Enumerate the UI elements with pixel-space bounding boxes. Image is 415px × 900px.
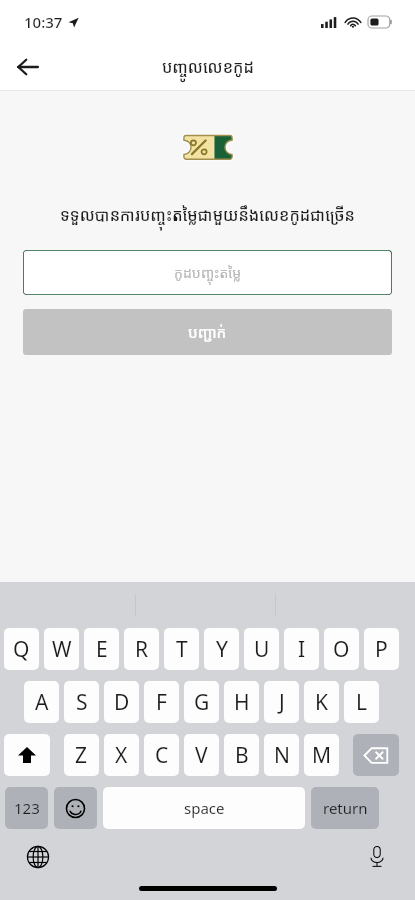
staticText: R	[135, 635, 149, 664]
button[interactable]: Z	[64, 734, 99, 776]
button[interactable]: M	[304, 734, 339, 776]
button[interactable]: X	[104, 734, 139, 776]
staticText: កូដបញ្ចុះតម្លៃ	[174, 263, 242, 282]
staticText: U	[254, 635, 270, 664]
button[interactable]: D	[104, 681, 139, 723]
button[interactable]: A	[24, 681, 59, 723]
staticText: បញ្ចូលលេខកូដ	[162, 56, 254, 78]
button[interactable]: J	[264, 681, 299, 723]
button[interactable]: បញ្ជាក់	[23, 309, 392, 355]
button[interactable]: R	[124, 628, 159, 670]
button[interactable]: Emoji	[54, 787, 97, 829]
staticText: I	[298, 635, 306, 664]
staticText: space	[184, 798, 225, 818]
button[interactable]: P	[364, 628, 399, 670]
button[interactable]: C	[144, 734, 179, 776]
button[interactable]: S	[64, 681, 99, 723]
staticText: V	[195, 741, 208, 770]
staticText: G	[194, 688, 210, 717]
staticText: return	[323, 798, 368, 818]
staticText: P	[375, 635, 388, 664]
staticText: D	[114, 688, 130, 717]
button[interactable]: return	[311, 787, 379, 829]
button[interactable]: Change keyboard language	[22, 841, 54, 873]
staticText: ទទួលបានការបញ្ចុះតម្លៃជាមួយនឹងលេខកូដជាច្រ…	[14, 204, 401, 226]
button[interactable]: Shift	[4, 734, 50, 776]
staticText: T	[176, 635, 188, 664]
button[interactable]: F	[144, 681, 179, 723]
button[interactable]: 123	[5, 787, 48, 829]
button[interactable]: B	[224, 734, 259, 776]
staticText: X	[115, 741, 128, 770]
staticText: Z	[75, 741, 88, 770]
staticText: J	[279, 688, 285, 717]
staticText: M	[312, 741, 332, 770]
staticText: B	[235, 741, 249, 770]
button[interactable]: Back	[8, 47, 48, 87]
button[interactable]: O	[324, 628, 359, 670]
staticText: A	[35, 688, 49, 717]
button[interactable]: V	[184, 734, 219, 776]
staticText: L	[356, 688, 368, 717]
staticText: W	[52, 635, 72, 664]
button[interactable]: G	[184, 681, 219, 723]
staticText: Y	[216, 635, 228, 664]
button[interactable]: N	[264, 734, 299, 776]
staticText: Q	[13, 635, 30, 664]
button[interactable]: T	[164, 628, 199, 670]
staticText: N	[274, 741, 290, 770]
staticText: F	[156, 688, 167, 717]
staticText: O	[333, 635, 350, 664]
button[interactable]: W	[44, 628, 79, 670]
staticText: K	[315, 688, 328, 717]
staticText: 10:37	[24, 12, 63, 32]
button[interactable]: L	[344, 681, 379, 723]
staticText: E	[96, 635, 108, 664]
button[interactable]: Y	[204, 628, 239, 670]
staticText: បញ្ជាក់	[188, 322, 227, 342]
button[interactable]: U	[244, 628, 279, 670]
button[interactable]: K	[304, 681, 339, 723]
button[interactable]: E	[84, 628, 119, 670]
button[interactable]: កូដបញ្ចុះតម្លៃ	[23, 250, 392, 295]
staticText: 123	[14, 798, 40, 818]
button[interactable]: Voice input	[361, 841, 393, 873]
staticText: H	[234, 688, 250, 717]
button[interactable]: space	[103, 787, 305, 829]
staticText: S	[76, 688, 88, 717]
button[interactable]: Q	[4, 628, 39, 670]
staticText: C	[155, 741, 169, 770]
button[interactable]: H	[224, 681, 259, 723]
button[interactable]: I	[284, 628, 319, 670]
button[interactable]: Backspace	[353, 734, 399, 776]
